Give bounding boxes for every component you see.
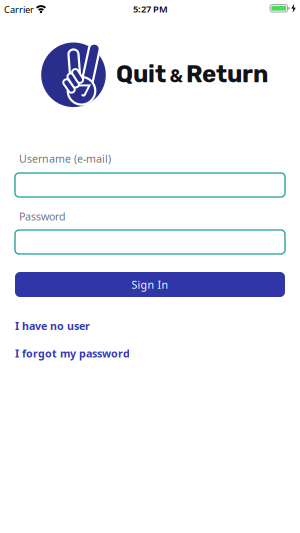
staticText: I forgot my password — [15, 346, 130, 361]
staticText: Sign In — [131, 277, 168, 292]
staticText: I have no user — [15, 319, 90, 333]
staticText: Username (e-mail) — [19, 151, 111, 166]
staticText: 5:27 PM — [133, 3, 168, 15]
staticText: Return — [186, 60, 268, 88]
button[interactable]: I forgot my password — [15, 346, 130, 361]
staticText: Quit — [116, 60, 166, 88]
staticText: Password — [19, 209, 66, 223]
staticText: Carrier — [4, 3, 34, 16]
staticText: & — [169, 65, 182, 87]
button[interactable]: I have no user — [15, 319, 90, 333]
button[interactable]: Username (e-mail) — [15, 173, 285, 197]
button[interactable]: Sign In — [15, 272, 285, 297]
button[interactable]: Password — [15, 230, 285, 254]
